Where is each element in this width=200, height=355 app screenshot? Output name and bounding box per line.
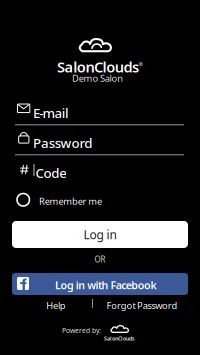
staticText: E-mail (33, 104, 69, 122)
button[interactable]: Help (40, 298, 72, 313)
button[interactable]: Code (15, 160, 191, 186)
staticText: Log in with Facebook (55, 278, 157, 292)
button[interactable]: Remember me (16, 191, 136, 209)
staticText: ® (138, 61, 142, 68)
staticText: Log in (83, 226, 116, 242)
staticText: Remember me (39, 195, 102, 207)
button[interactable]: Password (15, 130, 191, 158)
staticText: OR (94, 254, 105, 265)
button[interactable]: Log in (12, 221, 188, 248)
staticText: Help (46, 299, 66, 312)
staticText: SalonClouds (57, 57, 139, 76)
staticText: SalonClouds (104, 335, 135, 342)
staticText: Code (35, 164, 67, 182)
staticText: Forgot Password (106, 299, 178, 312)
staticText: Powered by: (62, 326, 101, 335)
staticText: Password (33, 134, 92, 152)
button[interactable]: Log in with Facebook (12, 273, 188, 295)
button[interactable]: Forgot Password (104, 298, 180, 313)
button[interactable]: E-mail (15, 100, 191, 128)
staticText: Demo Salon (72, 72, 123, 84)
